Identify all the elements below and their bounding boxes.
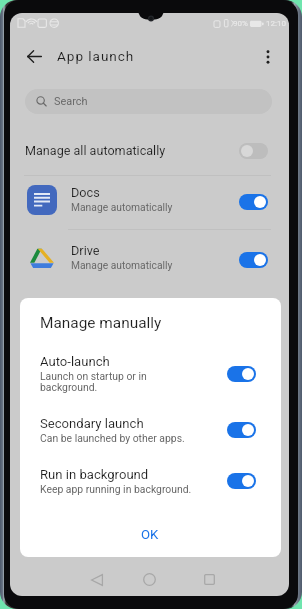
button[interactable]: More options [253,42,282,71]
button[interactable]: OK [132,523,168,545]
staticText: Manage automatically [71,259,173,271]
staticText: App launch [57,48,135,64]
staticText: Auto-launch [40,354,110,369]
button[interactable]: Run in background [20,463,281,505]
staticText: Secondary launch [40,416,144,431]
staticText: Manage manually [40,314,162,332]
staticText: 12:10 [266,19,286,28]
button[interactable]: Manage all automatically [10,127,289,175]
staticText: Manage all automatically [25,143,166,158]
staticText: Keep app running in background. [40,483,192,495]
button[interactable]: Secondary launch [20,412,281,454]
button[interactable]: Auto-launch [20,350,281,392]
button[interactable]: Recent apps [186,563,232,596]
button[interactable]: Docs [10,175,289,223]
staticText: Search [54,95,88,108]
button[interactable]: Navigate up [20,42,49,71]
staticText: Can be launched by other apps. [40,432,185,444]
staticText: 90% [233,19,248,28]
staticText: Docs [71,185,100,200]
button[interactable]: Drive [10,233,289,281]
staticText: Manage automatically [71,201,173,213]
button[interactable]: Back [74,563,120,596]
staticText: Drive [71,243,100,258]
button[interactable]: Search [25,89,272,114]
staticText: Run in background [40,467,149,482]
button[interactable]: Home [126,563,172,596]
staticText: Launch on startup or in background. [40,370,147,394]
staticText: OK [141,527,159,542]
